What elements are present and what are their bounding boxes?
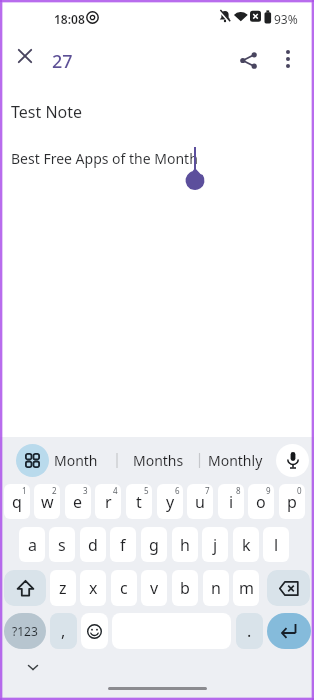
button[interactable] bbox=[272, 43, 304, 75]
button[interactable] bbox=[276, 444, 309, 477]
staticText: 4 bbox=[113, 485, 118, 496]
staticText: i bbox=[229, 491, 234, 513]
staticText: b bbox=[180, 577, 190, 599]
staticText: Test Note bbox=[11, 101, 83, 123]
button[interactable]: l bbox=[263, 527, 289, 562]
staticText: f bbox=[120, 534, 126, 556]
button[interactable]: b bbox=[172, 570, 198, 606]
staticText: . bbox=[247, 620, 252, 642]
button[interactable]: Monthly bbox=[200, 445, 270, 476]
button[interactable]: t bbox=[126, 484, 152, 519]
button[interactable]: h bbox=[172, 527, 198, 562]
button[interactable] bbox=[81, 613, 108, 649]
button[interactable]: Months bbox=[124, 445, 193, 476]
button[interactable]: x bbox=[80, 570, 106, 606]
button[interactable]: q bbox=[4, 484, 30, 519]
staticText: l bbox=[274, 534, 279, 556]
staticText: Monthly bbox=[208, 451, 263, 470]
staticText: x bbox=[89, 577, 98, 599]
button[interactable] bbox=[267, 570, 310, 606]
button[interactable] bbox=[231, 43, 265, 77]
staticText: 6 bbox=[175, 485, 180, 496]
staticText: c bbox=[120, 577, 128, 599]
button[interactable] bbox=[267, 613, 311, 649]
staticText: g bbox=[149, 534, 159, 556]
button[interactable]: k bbox=[233, 527, 259, 562]
staticText: s bbox=[58, 534, 66, 556]
staticText: , bbox=[61, 620, 66, 642]
button[interactable] bbox=[19, 655, 47, 679]
staticText: Best Free Apps of the Month bbox=[11, 149, 198, 168]
staticText: e bbox=[73, 491, 83, 513]
staticText: t bbox=[136, 491, 142, 513]
staticText: 9 bbox=[266, 485, 271, 496]
staticText: 93% bbox=[274, 11, 298, 27]
staticText: a bbox=[28, 534, 37, 556]
button[interactable]: g bbox=[141, 527, 167, 562]
button[interactable]: , bbox=[50, 613, 77, 649]
staticText: h bbox=[180, 534, 190, 556]
button[interactable]: p bbox=[279, 484, 305, 519]
button[interactable]: m bbox=[233, 570, 259, 606]
staticText: u bbox=[195, 491, 205, 513]
staticText: j bbox=[213, 534, 218, 556]
staticText: 3 bbox=[83, 485, 88, 496]
staticText: o bbox=[256, 491, 266, 513]
staticText: 7 bbox=[205, 485, 210, 496]
button[interactable] bbox=[9, 40, 41, 72]
staticText: 27 bbox=[52, 49, 73, 74]
button[interactable]: u bbox=[187, 484, 213, 519]
button[interactable]: r bbox=[95, 484, 121, 519]
button[interactable]: ?123 bbox=[4, 613, 46, 649]
staticText: n bbox=[211, 577, 221, 599]
staticText: y bbox=[166, 491, 175, 513]
button[interactable]: j bbox=[202, 527, 228, 562]
button[interactable] bbox=[16, 444, 49, 477]
button[interactable]: Month bbox=[52, 445, 100, 476]
staticText: 1 bbox=[22, 485, 27, 496]
button[interactable]: f bbox=[110, 527, 136, 562]
button[interactable]: c bbox=[111, 570, 137, 606]
button[interactable]: y bbox=[157, 484, 183, 519]
button[interactable]: e bbox=[65, 484, 91, 519]
staticText: Months bbox=[133, 451, 184, 470]
staticText: z bbox=[59, 577, 67, 599]
staticText: w bbox=[41, 491, 54, 513]
staticText: p bbox=[287, 491, 297, 513]
staticText: 2 bbox=[52, 485, 57, 496]
staticText: k bbox=[242, 534, 251, 556]
button[interactable]: z bbox=[50, 570, 76, 606]
button[interactable]: d bbox=[80, 527, 106, 562]
button[interactable]: s bbox=[49, 527, 75, 562]
button[interactable] bbox=[4, 570, 46, 606]
staticText: d bbox=[88, 534, 98, 556]
staticText: ?123 bbox=[12, 623, 38, 639]
button[interactable]: a bbox=[19, 527, 45, 562]
staticText: m bbox=[239, 577, 254, 599]
staticText: Month bbox=[54, 451, 98, 470]
staticText: r bbox=[105, 491, 112, 513]
staticText: 8 bbox=[236, 485, 241, 496]
button[interactable]: n bbox=[203, 570, 229, 606]
button[interactable]: w bbox=[34, 484, 60, 519]
button[interactable]: v bbox=[141, 570, 167, 606]
button[interactable]: o bbox=[248, 484, 274, 519]
staticText: q bbox=[12, 491, 22, 513]
staticText: v bbox=[150, 577, 159, 599]
staticText: 5 bbox=[144, 485, 149, 496]
staticText: 0 bbox=[297, 485, 302, 496]
button[interactable]: i bbox=[218, 484, 244, 519]
staticText: 18:08 bbox=[54, 11, 85, 27]
button[interactable]: . bbox=[236, 613, 263, 649]
